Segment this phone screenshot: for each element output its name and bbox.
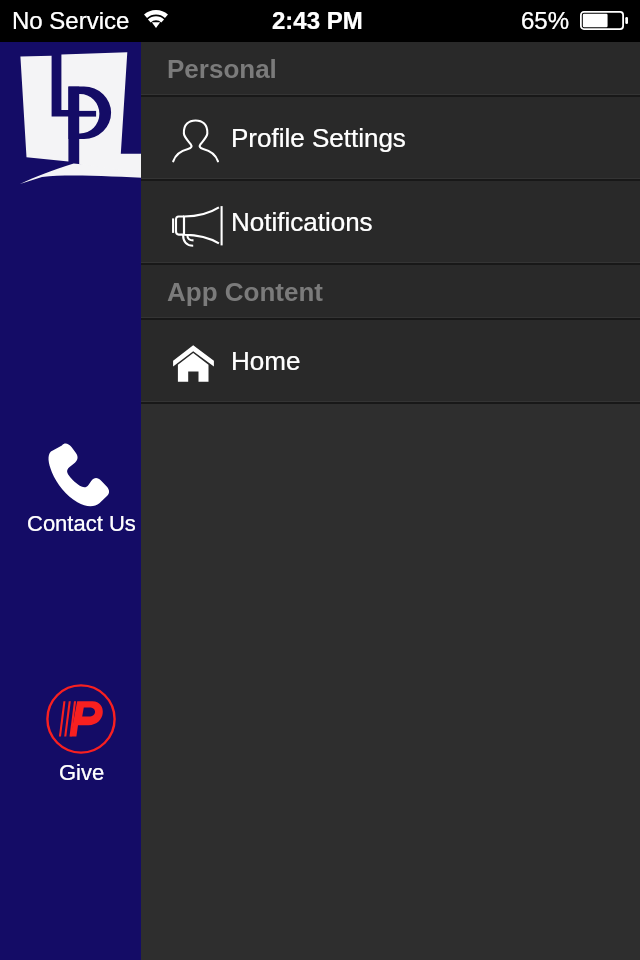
- staticText: Home: [231, 346, 301, 375]
- staticText: 2:43 PM: [272, 7, 363, 34]
- staticText: Give: [59, 760, 105, 785]
- staticText: Personal: [167, 54, 277, 83]
- button[interactable]: Notifications: [141, 181, 640, 265]
- staticText: No Service: [12, 7, 130, 34]
- button[interactable]: Give: [18, 678, 144, 788]
- button[interactable]: Profile Settings: [141, 97, 640, 181]
- staticText: App Content: [167, 277, 323, 306]
- staticText: Profile Settings: [231, 123, 406, 152]
- staticText: 65%: [521, 7, 570, 34]
- button[interactable]: Contact Us: [18, 434, 144, 542]
- staticText: Notifications: [231, 207, 373, 236]
- button[interactable]: Home: [141, 320, 640, 404]
- staticText: Contact Us: [27, 511, 136, 536]
